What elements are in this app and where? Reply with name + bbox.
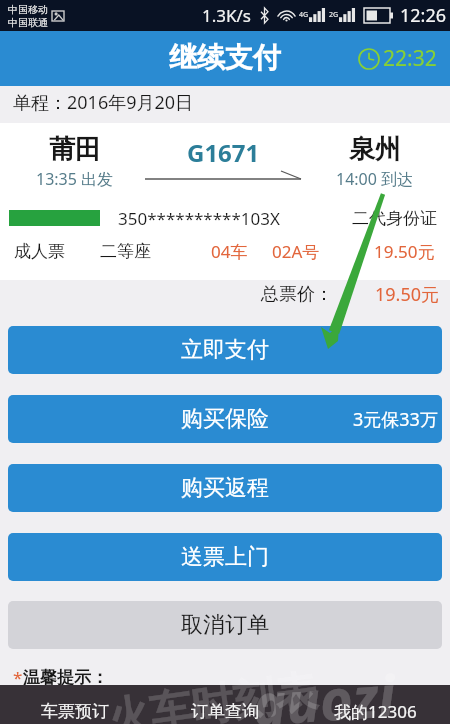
staticText: 2G (329, 10, 339, 20)
staticText: 莆田 (49, 133, 101, 166)
staticText: 中国联通 (8, 16, 48, 29)
staticText: 购买保险 (181, 405, 269, 433)
staticText: 二代身份证 (352, 208, 437, 229)
staticText: 取消订单 (181, 611, 269, 639)
staticText: 我的12306 (334, 700, 417, 723)
staticText: 继续支付 (169, 40, 281, 75)
button[interactable]: 订单查询 (150, 685, 300, 724)
staticText: 02A号 (272, 240, 320, 263)
button[interactable]: 立即支付 (8, 326, 442, 374)
staticText: 4G (299, 10, 309, 20)
staticText: 订单查询 (191, 701, 259, 722)
staticText: 送票上门 (181, 543, 269, 571)
staticText: 19.50元 (374, 240, 435, 263)
staticText: 立即支付 (181, 336, 269, 364)
staticText: 总票价： (261, 283, 333, 306)
staticText: 12:26 (400, 3, 447, 28)
staticText: 04车 (211, 240, 248, 263)
staticText: 350**********103X (118, 207, 280, 230)
button[interactable]: 取消订单 (8, 601, 442, 649)
staticText: 单程：2016年9月20日 (13, 90, 194, 115)
staticText: guozi (250, 656, 398, 724)
button[interactable]: 送票上门 (8, 533, 442, 581)
staticText: 14:00 到达 (336, 168, 414, 190)
staticText: 温馨提示： (23, 667, 108, 688)
button[interactable]: 购买返程 (8, 464, 442, 512)
button[interactable]: 购买保险 (8, 395, 442, 443)
staticText: 19.50元 (375, 282, 440, 307)
staticText: 成人票 (14, 241, 65, 262)
staticText: 3元保33万 (353, 407, 438, 432)
button[interactable]: 车票预订 (0, 685, 150, 724)
staticText: 泉州 (349, 133, 401, 166)
staticText: * (13, 666, 23, 689)
button[interactable]: 我的12306 (300, 685, 450, 724)
staticText: 二等座 (100, 241, 151, 262)
staticText: 车票预订 (41, 701, 109, 722)
staticText: G1671 (187, 136, 260, 169)
staticText: 火车时刻表 (105, 665, 320, 724)
staticText: 13:35 出发 (36, 168, 114, 190)
staticText: 1.3K/s (202, 4, 251, 27)
staticText: 中国移动 (8, 3, 48, 16)
staticText: 购买返程 (181, 474, 269, 502)
staticText: 22:32 (383, 44, 437, 73)
